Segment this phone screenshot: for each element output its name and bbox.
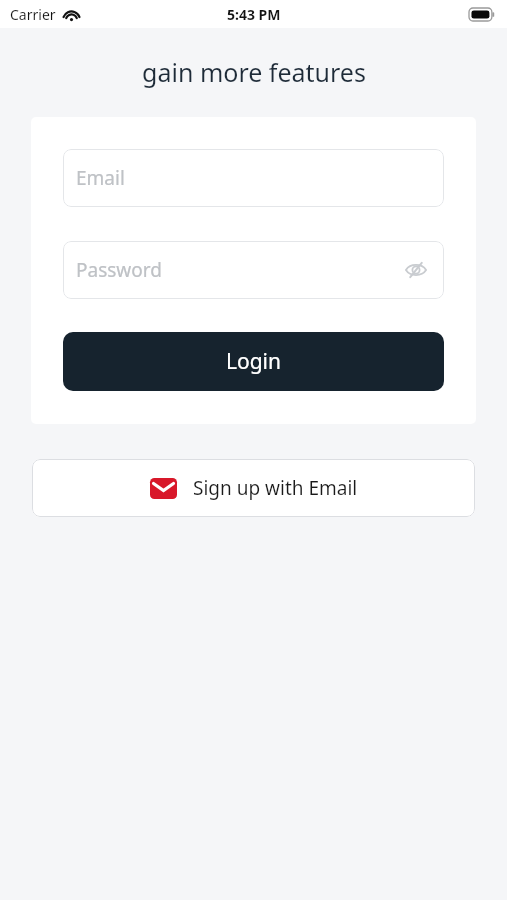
button[interactable]: Password [63, 241, 444, 299]
staticText: Password [76, 257, 162, 283]
staticText: Login [226, 347, 282, 376]
button[interactable]: Show password [401, 255, 431, 285]
button[interactable]: Email [63, 149, 444, 207]
staticText: Sign up with Email [193, 475, 358, 501]
staticText: 5:43 PM [227, 5, 281, 24]
staticText: Email [76, 165, 125, 191]
button[interactable]: Login [63, 332, 444, 391]
staticText: Carrier [10, 5, 56, 24]
staticText: gain more features [142, 55, 366, 89]
button[interactable]: Sign up with Email [32, 459, 475, 517]
